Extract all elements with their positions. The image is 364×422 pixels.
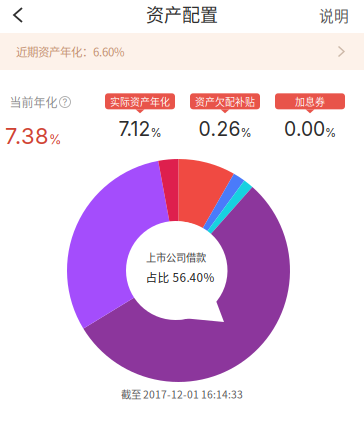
button[interactable]: 近期资产年化：6.60% (0, 33, 364, 70)
staticText: 7.38 (5, 123, 49, 149)
staticText: 当前年化 (9, 93, 57, 111)
staticText: 0.00 (284, 117, 325, 141)
staticText: 加息券 (295, 94, 325, 109)
staticText: 近期资产年化：6.60% (16, 43, 125, 60)
staticText: 截至 2017-12-01 16:14:33 (121, 386, 243, 402)
staticText: % (150, 126, 161, 140)
staticText: 上市公司借款 (146, 250, 206, 264)
staticText: 说明 (319, 4, 349, 26)
staticText: 占比 56.40% (145, 268, 214, 285)
staticText: ? (62, 96, 67, 108)
staticText: 资产欠配补贴 (195, 94, 255, 109)
staticText: 实际资产年化 (110, 94, 170, 109)
staticText: % (325, 126, 336, 140)
staticText: 0.26 (198, 117, 240, 141)
staticText: 资产配置 (146, 1, 218, 27)
staticText: 7.12 (118, 117, 150, 141)
button[interactable]: Back (0, 0, 36, 31)
staticText: % (240, 126, 251, 140)
button[interactable]: 说明 (307, 0, 361, 31)
staticText: % (49, 132, 61, 147)
